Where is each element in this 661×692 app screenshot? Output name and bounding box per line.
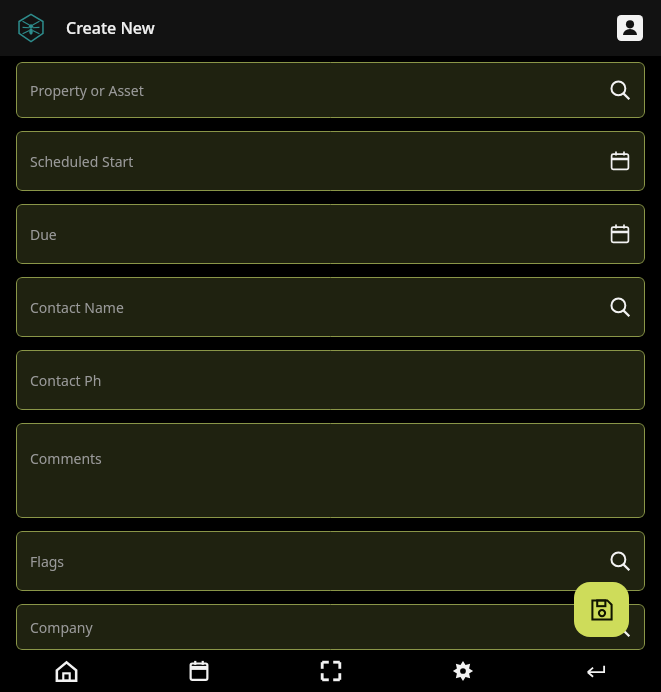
button[interactable]: Search Contact Name xyxy=(605,292,635,322)
button[interactable]: Contact Ph xyxy=(16,350,645,410)
button[interactable]: Comments xyxy=(16,423,645,518)
button[interactable]: Account xyxy=(613,11,647,45)
button[interactable]: Property or Asset xyxy=(16,62,645,118)
button[interactable]: Pick date for Due xyxy=(605,219,635,249)
button[interactable]: Search Flags xyxy=(605,546,635,576)
button[interactable]: Save xyxy=(574,582,629,637)
staticText: Property or Asset xyxy=(30,81,144,100)
button[interactable]: Flags xyxy=(16,531,645,591)
button[interactable]: Home xyxy=(0,650,133,692)
staticText: Contact Ph xyxy=(30,371,102,390)
button[interactable]: Company xyxy=(16,604,645,650)
button[interactable]: Pick date for Scheduled Start xyxy=(605,146,635,176)
button[interactable]: Scan xyxy=(265,650,397,692)
button[interactable]: App logo xyxy=(14,11,48,45)
staticText: Comments xyxy=(30,449,102,468)
button[interactable]: Settings xyxy=(397,650,529,692)
staticText: Contact Name xyxy=(30,298,124,317)
button[interactable]: Due xyxy=(16,204,645,264)
staticText: Create New xyxy=(66,17,155,39)
button[interactable]: Scheduled Start xyxy=(16,131,645,191)
button[interactable]: Search Property or Asset xyxy=(605,75,635,105)
button[interactable]: Calendar xyxy=(133,650,265,692)
staticText: Scheduled Start xyxy=(30,152,134,171)
staticText: Flags xyxy=(30,552,65,571)
button[interactable]: Search Company xyxy=(605,612,635,642)
staticText: Company xyxy=(30,618,93,637)
button[interactable]: Back xyxy=(529,650,661,692)
button[interactable]: Contact Name xyxy=(16,277,645,337)
staticText: Due xyxy=(30,225,57,244)
